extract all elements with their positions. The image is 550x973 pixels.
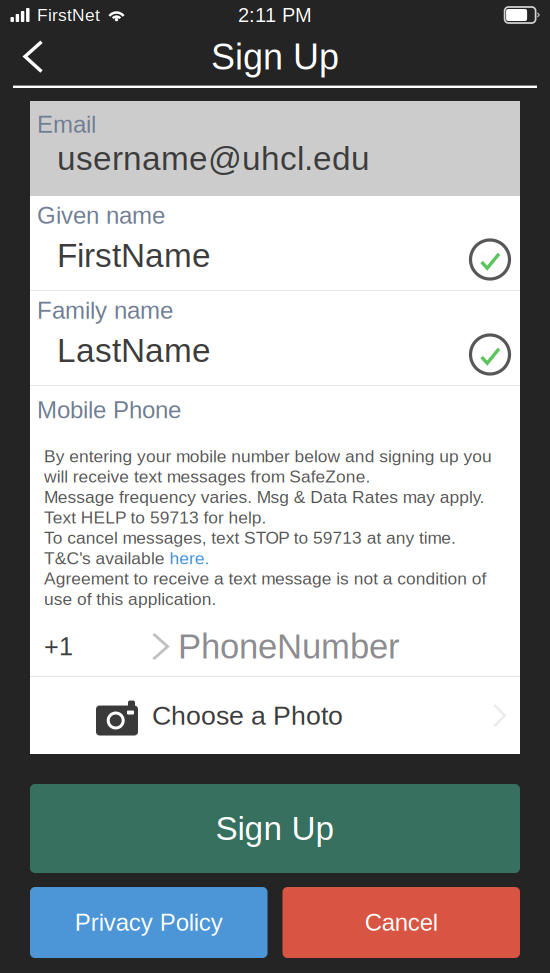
button[interactable]: Cancel xyxy=(282,887,520,958)
button[interactable]: Choose a Photo xyxy=(30,677,520,754)
staticText: PhoneNumber xyxy=(178,627,400,666)
staticText: FirstName xyxy=(57,237,211,274)
staticText: Privacy Policy xyxy=(75,909,223,936)
staticText: Family name xyxy=(37,297,173,324)
staticText: To cancel messages, text STOP to 59713 a… xyxy=(44,528,456,547)
button[interactable]: +1 xyxy=(30,617,520,676)
staticText: use of this application. xyxy=(44,589,216,609)
staticText: Mobile Phone xyxy=(37,397,181,423)
staticText: Email xyxy=(37,111,96,138)
button[interactable]: Back xyxy=(0,31,62,83)
staticText: Given name xyxy=(37,202,165,229)
staticText: Sign Up xyxy=(211,37,339,77)
staticText: LastName xyxy=(57,332,211,369)
staticText: Choose a Photo xyxy=(152,701,343,730)
staticText: Sign Up xyxy=(215,810,334,847)
staticText: Message frequency varies. Msg & Data Rat… xyxy=(44,487,484,507)
button[interactable]: Sign Up xyxy=(30,784,520,873)
staticText: will receive text messages from SafeZone… xyxy=(44,467,370,486)
staticText: Cancel xyxy=(365,909,438,936)
button[interactable]: Privacy Policy xyxy=(30,887,267,958)
staticText: T&C's available xyxy=(44,548,169,568)
staticText: Agreement to receive a text message is n… xyxy=(44,569,486,588)
staticText: username@uhcl.edu xyxy=(57,140,370,177)
staticText: FirstNet xyxy=(37,5,100,25)
staticText: +1 xyxy=(44,632,73,661)
staticText: Text HELP to 59713 for help. xyxy=(44,508,266,527)
staticText: By entering your mobile number below and… xyxy=(44,446,492,466)
staticText: here. xyxy=(169,548,209,568)
staticText: 2:11 PM xyxy=(238,4,312,26)
